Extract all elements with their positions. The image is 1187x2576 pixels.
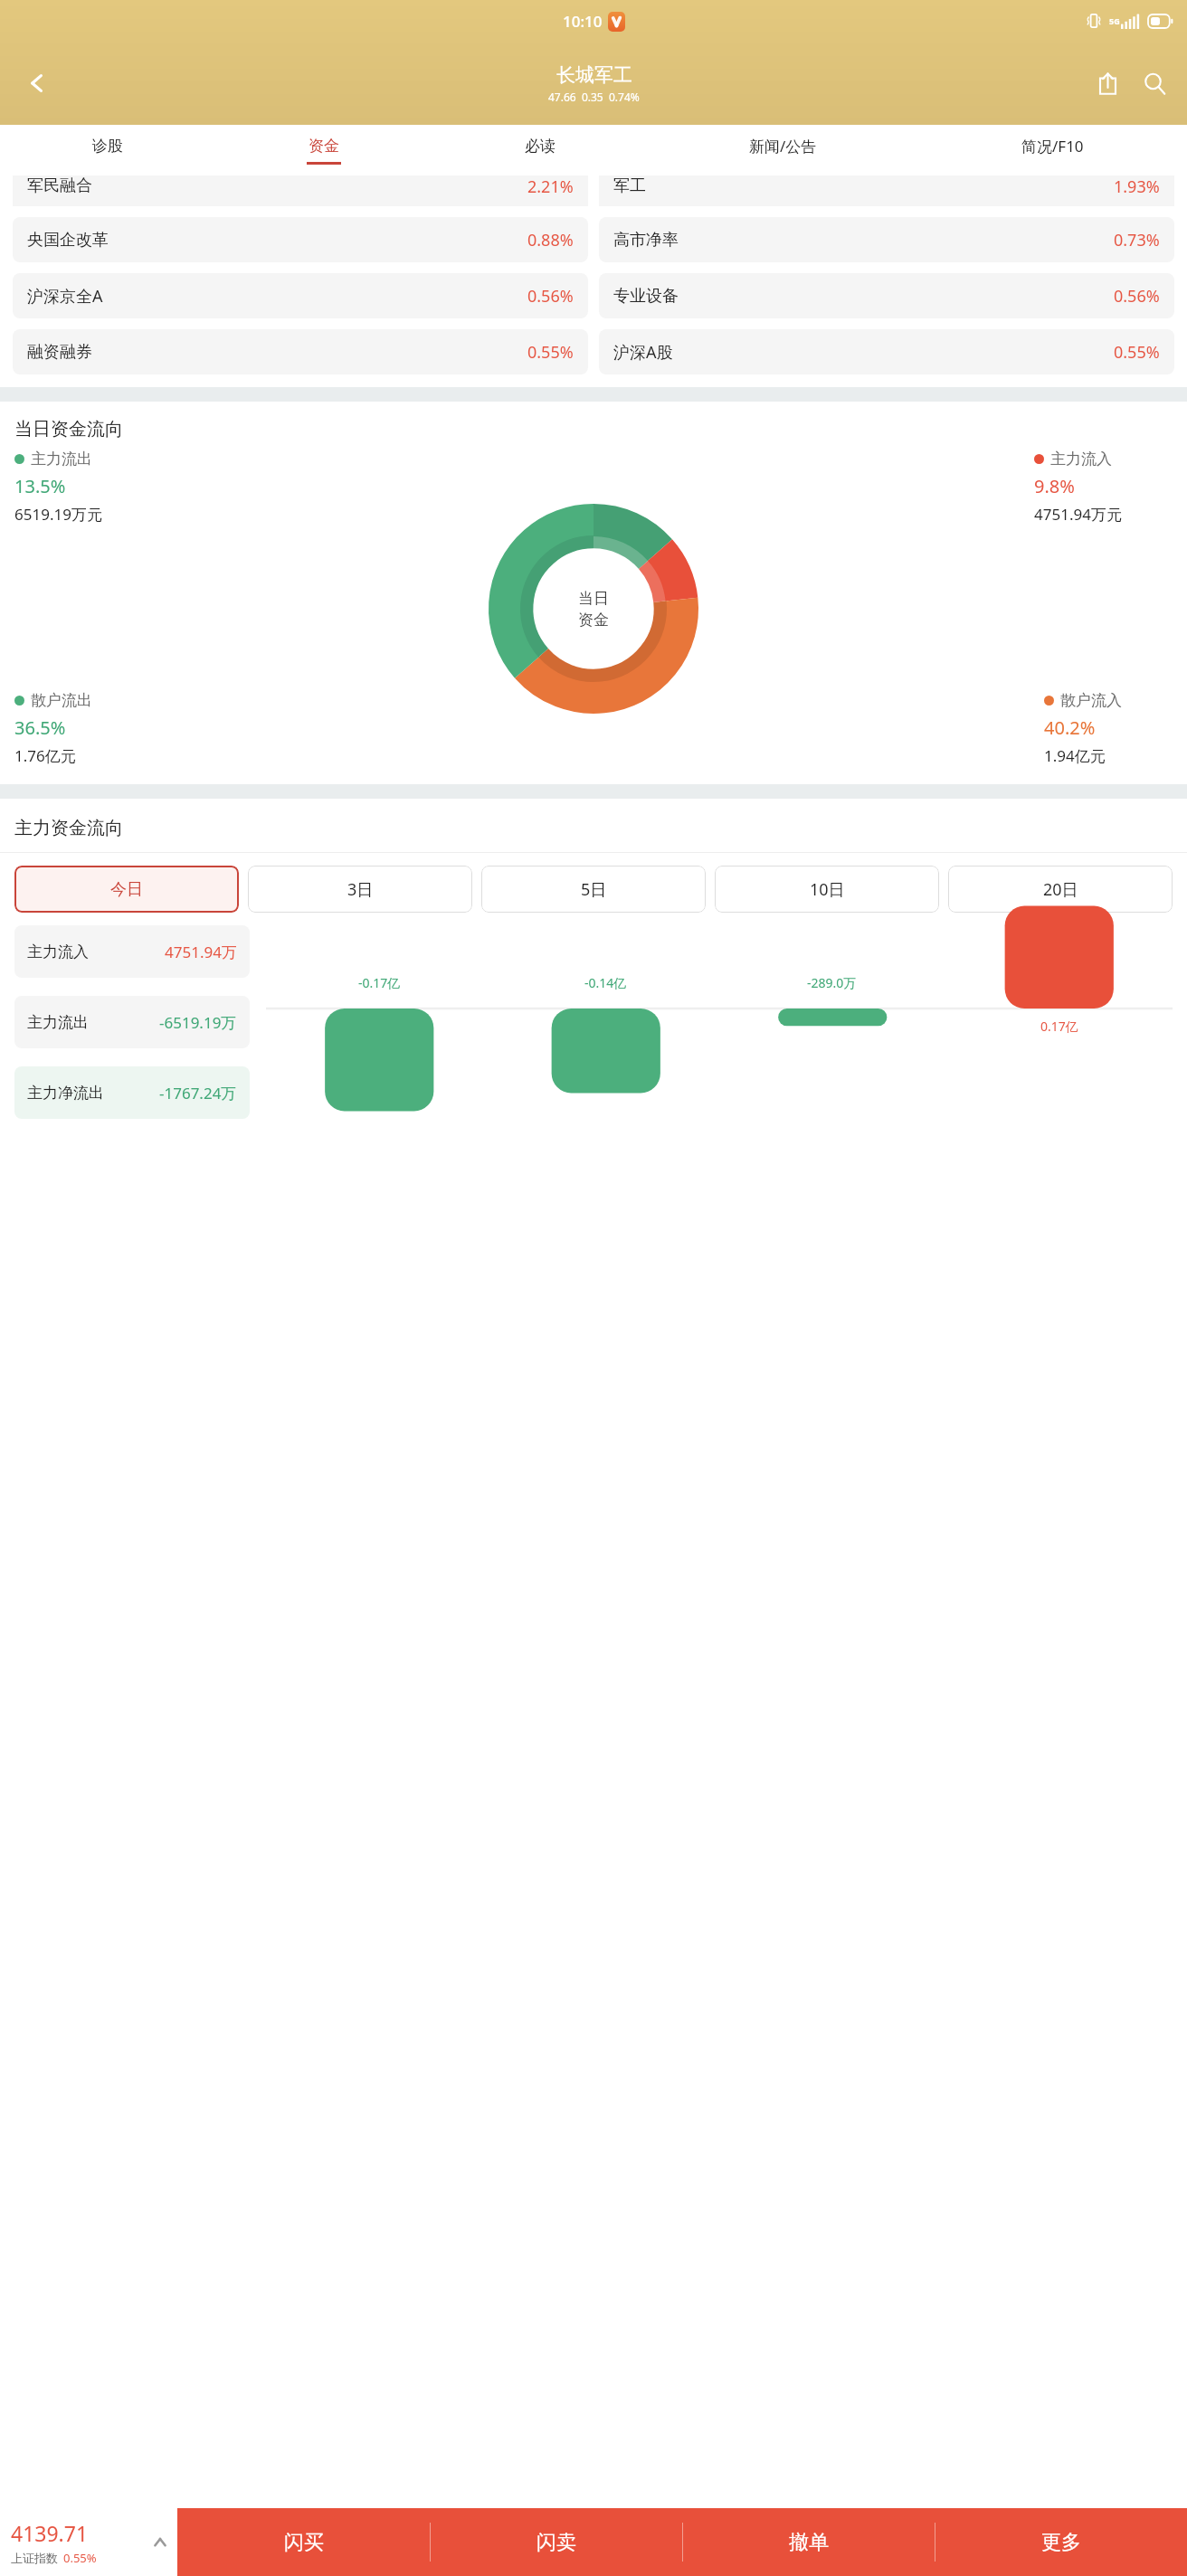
button[interactable]: 主力流出 xyxy=(14,996,250,1048)
staticText: -0.14亿 xyxy=(584,974,627,991)
staticText: -6519.19万 xyxy=(159,1012,237,1033)
staticText: 资金 xyxy=(578,611,609,630)
staticText: 20日 xyxy=(1043,878,1078,901)
staticText: 当日 xyxy=(578,589,609,608)
staticText: 13.5% xyxy=(14,474,66,498)
button[interactable]: 5日 xyxy=(481,866,706,913)
staticText: 主力流出 xyxy=(27,1013,89,1032)
staticText: 上证指数 xyxy=(11,2551,58,2565)
button[interactable]: 诊股 xyxy=(0,125,215,175)
staticText: 简况/F10 xyxy=(1021,136,1084,156)
staticText: 专业设备 xyxy=(613,286,679,307)
button[interactable]: 新闻/公告 xyxy=(648,125,917,175)
staticText: 1.93% xyxy=(1114,175,1160,198)
staticText: 主力资金流向 xyxy=(14,817,123,839)
staticText: 更多 xyxy=(1041,2530,1081,2555)
staticText: 0.56% xyxy=(527,285,574,308)
button[interactable]: 必读 xyxy=(432,125,648,175)
staticText: 军工 xyxy=(613,175,646,196)
staticText: 1.94亿元 xyxy=(1044,745,1106,766)
button[interactable]: 沪深A股 xyxy=(599,329,1174,374)
staticText: 40.2% xyxy=(1044,715,1096,740)
button[interactable]: 简况/F10 xyxy=(917,125,1187,175)
staticText: 0.55% xyxy=(63,2550,97,2566)
button[interactable]: 闪买 xyxy=(177,2508,430,2576)
staticText: 0.17亿 xyxy=(1040,1018,1078,1035)
staticText: 融资融券 xyxy=(27,342,92,363)
staticText: 当日资金流向 xyxy=(14,418,123,440)
button[interactable]: 军工 xyxy=(599,175,1174,206)
staticText: 散户流出 xyxy=(31,691,92,710)
staticText: 4139.71 xyxy=(11,2519,89,2547)
staticText: 资金 xyxy=(309,137,339,156)
button[interactable]: 资金 xyxy=(215,125,432,175)
button[interactable]: 10日 xyxy=(715,866,939,913)
staticText: 3日 xyxy=(347,878,374,901)
staticText: 4751.94万 xyxy=(165,942,237,962)
staticText: 0.73% xyxy=(1114,229,1160,251)
staticText: 9.8% xyxy=(1034,474,1075,498)
staticText: 10:10 xyxy=(563,11,603,32)
staticText: 主力流入 xyxy=(27,942,89,961)
button[interactable]: 高市净率 xyxy=(599,217,1174,262)
staticText: 10日 xyxy=(810,878,845,901)
staticText: 36.5% xyxy=(14,715,66,740)
staticText: 撤单 xyxy=(789,2530,829,2555)
button[interactable]: 撤单 xyxy=(683,2508,935,2576)
button[interactable]: Search xyxy=(1131,60,1178,107)
button[interactable]: 主力净流出 xyxy=(14,1066,250,1119)
staticText: 主力流入 xyxy=(1050,450,1112,469)
staticText: 主力净流出 xyxy=(27,1084,104,1103)
staticText: 4751.94万元 xyxy=(1034,504,1122,525)
button[interactable]: Share xyxy=(1084,60,1131,107)
staticText: 今日 xyxy=(110,879,143,900)
button[interactable]: 军民融合 xyxy=(13,175,588,206)
staticText: 5G xyxy=(1109,15,1120,26)
staticText: 47.66 0.35 0.74% xyxy=(548,90,640,104)
staticText: -0.17亿 xyxy=(358,974,401,991)
button[interactable]: 融资融券 xyxy=(13,329,588,374)
staticText: 央国企改革 xyxy=(27,230,109,251)
staticText: -1767.24万 xyxy=(159,1083,237,1103)
button[interactable]: 专业设备 xyxy=(599,273,1174,318)
button[interactable]: 3日 xyxy=(248,866,472,913)
staticText: 新闻/公告 xyxy=(749,136,817,156)
button[interactable]: 闪卖 xyxy=(431,2508,682,2576)
staticText: 诊股 xyxy=(92,137,123,156)
staticText: 闪卖 xyxy=(537,2530,576,2555)
staticText: 5日 xyxy=(581,878,607,901)
staticText: 高市净率 xyxy=(613,230,679,251)
button[interactable]: 更多 xyxy=(935,2508,1187,2576)
staticText: 沪深京全A xyxy=(27,285,103,308)
staticText: 0.55% xyxy=(1114,341,1160,364)
button[interactable]: 20日 xyxy=(948,866,1173,913)
staticText: 闪买 xyxy=(284,2530,324,2555)
button[interactable]: 主力流入 xyxy=(14,925,250,978)
staticText: 散户流入 xyxy=(1060,691,1122,710)
staticText: 1.76亿元 xyxy=(14,745,76,766)
staticText: 主力流出 xyxy=(31,450,92,469)
button[interactable]: Back xyxy=(13,59,62,108)
button[interactable]: 沪深京全A xyxy=(13,273,588,318)
staticText: 沪深A股 xyxy=(613,341,673,364)
button[interactable]: 今日 xyxy=(14,866,239,913)
staticText: 0.88% xyxy=(527,229,574,251)
staticText: -289.0万 xyxy=(807,974,857,991)
staticText: 6519.19万元 xyxy=(14,504,102,525)
staticText: 0.55% xyxy=(527,341,574,364)
staticText: 长城军工 xyxy=(556,63,632,87)
button[interactable]: 4139.71 xyxy=(0,2508,177,2576)
staticText: 0.56% xyxy=(1114,285,1160,308)
staticText: 必读 xyxy=(525,137,556,156)
staticText: 军民融合 xyxy=(27,175,92,196)
staticText: 2.21% xyxy=(527,175,574,198)
button[interactable]: 央国企改革 xyxy=(13,217,588,262)
